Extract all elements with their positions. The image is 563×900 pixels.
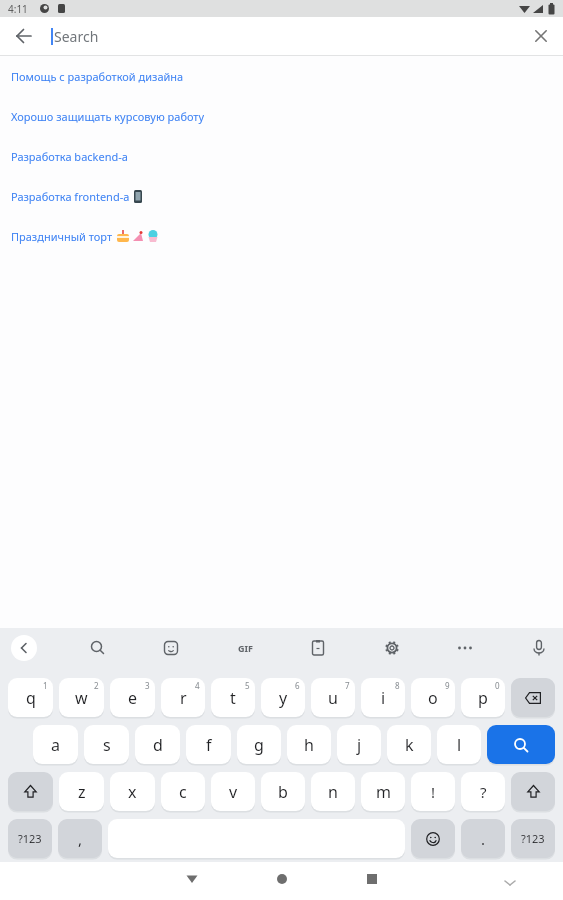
staticText: s [103, 734, 111, 756]
button[interactable]: i [361, 678, 405, 717]
staticText: 3 [145, 680, 150, 691]
staticText: 4 [195, 680, 200, 691]
staticText: g [254, 734, 264, 756]
staticText: ! [431, 782, 436, 802]
button[interactable] [502, 873, 518, 889]
button[interactable] [378, 634, 406, 662]
button[interactable]: p [461, 678, 505, 717]
staticText: i [381, 687, 386, 709]
button[interactable] [525, 634, 553, 662]
button[interactable]: x [110, 772, 155, 811]
staticText: 4:11 [8, 2, 28, 16]
staticText: e [128, 687, 138, 709]
button[interactable]: Хорошо защищать курсовую работу [0, 96, 563, 136]
staticText: 0 [495, 680, 500, 691]
button[interactable] [10, 22, 38, 50]
staticText: r [180, 687, 187, 709]
button[interactable]: c [161, 772, 205, 811]
button[interactable] [157, 634, 185, 662]
staticText: f [206, 734, 212, 756]
button[interactable]: ? [461, 772, 505, 811]
button[interactable]: m [361, 772, 405, 811]
button[interactable]: , [58, 819, 102, 858]
staticText: Хорошо защищать курсовую работу [11, 109, 205, 124]
staticText: , [78, 829, 83, 849]
button[interactable] [511, 772, 555, 811]
button[interactable]: ?123 [8, 819, 52, 858]
staticText: Search [54, 27, 99, 46]
button[interactable] [84, 634, 112, 662]
button[interactable]: d [135, 725, 180, 764]
staticText: Разработка frontend-а [11, 189, 130, 204]
button[interactable]: j [337, 725, 381, 764]
staticText: Помощь с разработкой дизайна [11, 69, 184, 84]
button[interactable]: Разработка frontend-а [0, 176, 563, 216]
staticText: q [26, 687, 36, 709]
staticText: c [179, 781, 187, 803]
button[interactable] [304, 634, 332, 662]
button[interactable]: t [211, 678, 255, 717]
staticText: p [478, 687, 488, 709]
staticText: x [128, 781, 137, 803]
button[interactable]: e [110, 678, 155, 717]
button[interactable]: Разработка backend-а [0, 136, 563, 176]
button[interactable]: o [411, 678, 455, 717]
button[interactable]: h [287, 725, 331, 764]
staticText: 1 [43, 680, 48, 691]
button[interactable] [451, 634, 479, 662]
staticText: t [230, 687, 236, 709]
staticText: z [78, 781, 86, 803]
staticText: k [405, 734, 414, 756]
staticText: 5 [245, 680, 250, 691]
button[interactable]: r [161, 678, 205, 717]
staticText: h [304, 734, 314, 756]
staticText: 9 [445, 680, 450, 691]
button[interactable]: u [311, 678, 355, 717]
staticText: w [75, 687, 88, 709]
staticText: Праздничный торт [11, 229, 113, 244]
button[interactable]: y [261, 678, 305, 717]
button[interactable] [8, 772, 53, 811]
staticText: v [229, 781, 238, 803]
button[interactable]: b [261, 772, 305, 811]
staticText: ? [480, 782, 487, 802]
button[interactable]: n [311, 772, 355, 811]
staticText: 7 [345, 680, 350, 691]
button[interactable]: w [59, 678, 104, 717]
button[interactable]: g [237, 725, 281, 764]
button[interactable]: s [84, 725, 129, 764]
staticText: n [328, 781, 338, 803]
button[interactable] [487, 725, 555, 764]
button[interactable] [529, 24, 553, 48]
button[interactable]: Праздничный торт [0, 216, 563, 256]
staticText: 6 [295, 680, 300, 691]
staticText: b [278, 781, 288, 803]
staticText: a [51, 734, 60, 756]
button[interactable]: k [387, 725, 431, 764]
button[interactable]: a [33, 725, 78, 764]
button[interactable] [365, 872, 379, 886]
button[interactable] [185, 872, 199, 886]
button[interactable]: ! [411, 772, 455, 811]
staticText: ?123 [521, 831, 545, 846]
button[interactable]: . [461, 819, 505, 858]
staticText: d [153, 734, 163, 756]
staticText: o [428, 687, 438, 709]
button[interactable]: Помощь с разработкой дизайна [0, 56, 563, 96]
button[interactable]: q [8, 678, 53, 717]
button[interactable]: v [211, 772, 255, 811]
button[interactable] [411, 819, 455, 858]
button[interactable]: l [437, 725, 481, 764]
button[interactable] [511, 678, 555, 717]
button[interactable]: f [186, 725, 231, 764]
button[interactable] [10, 634, 38, 662]
staticText: Разработка backend-а [11, 149, 128, 164]
staticText: u [328, 687, 338, 709]
button[interactable] [275, 872, 289, 886]
button[interactable]: GIF [231, 634, 259, 662]
button[interactable]: ?123 [511, 819, 555, 858]
button[interactable]: z [59, 772, 104, 811]
staticText: j [357, 734, 362, 756]
staticText: 2 [94, 680, 99, 691]
